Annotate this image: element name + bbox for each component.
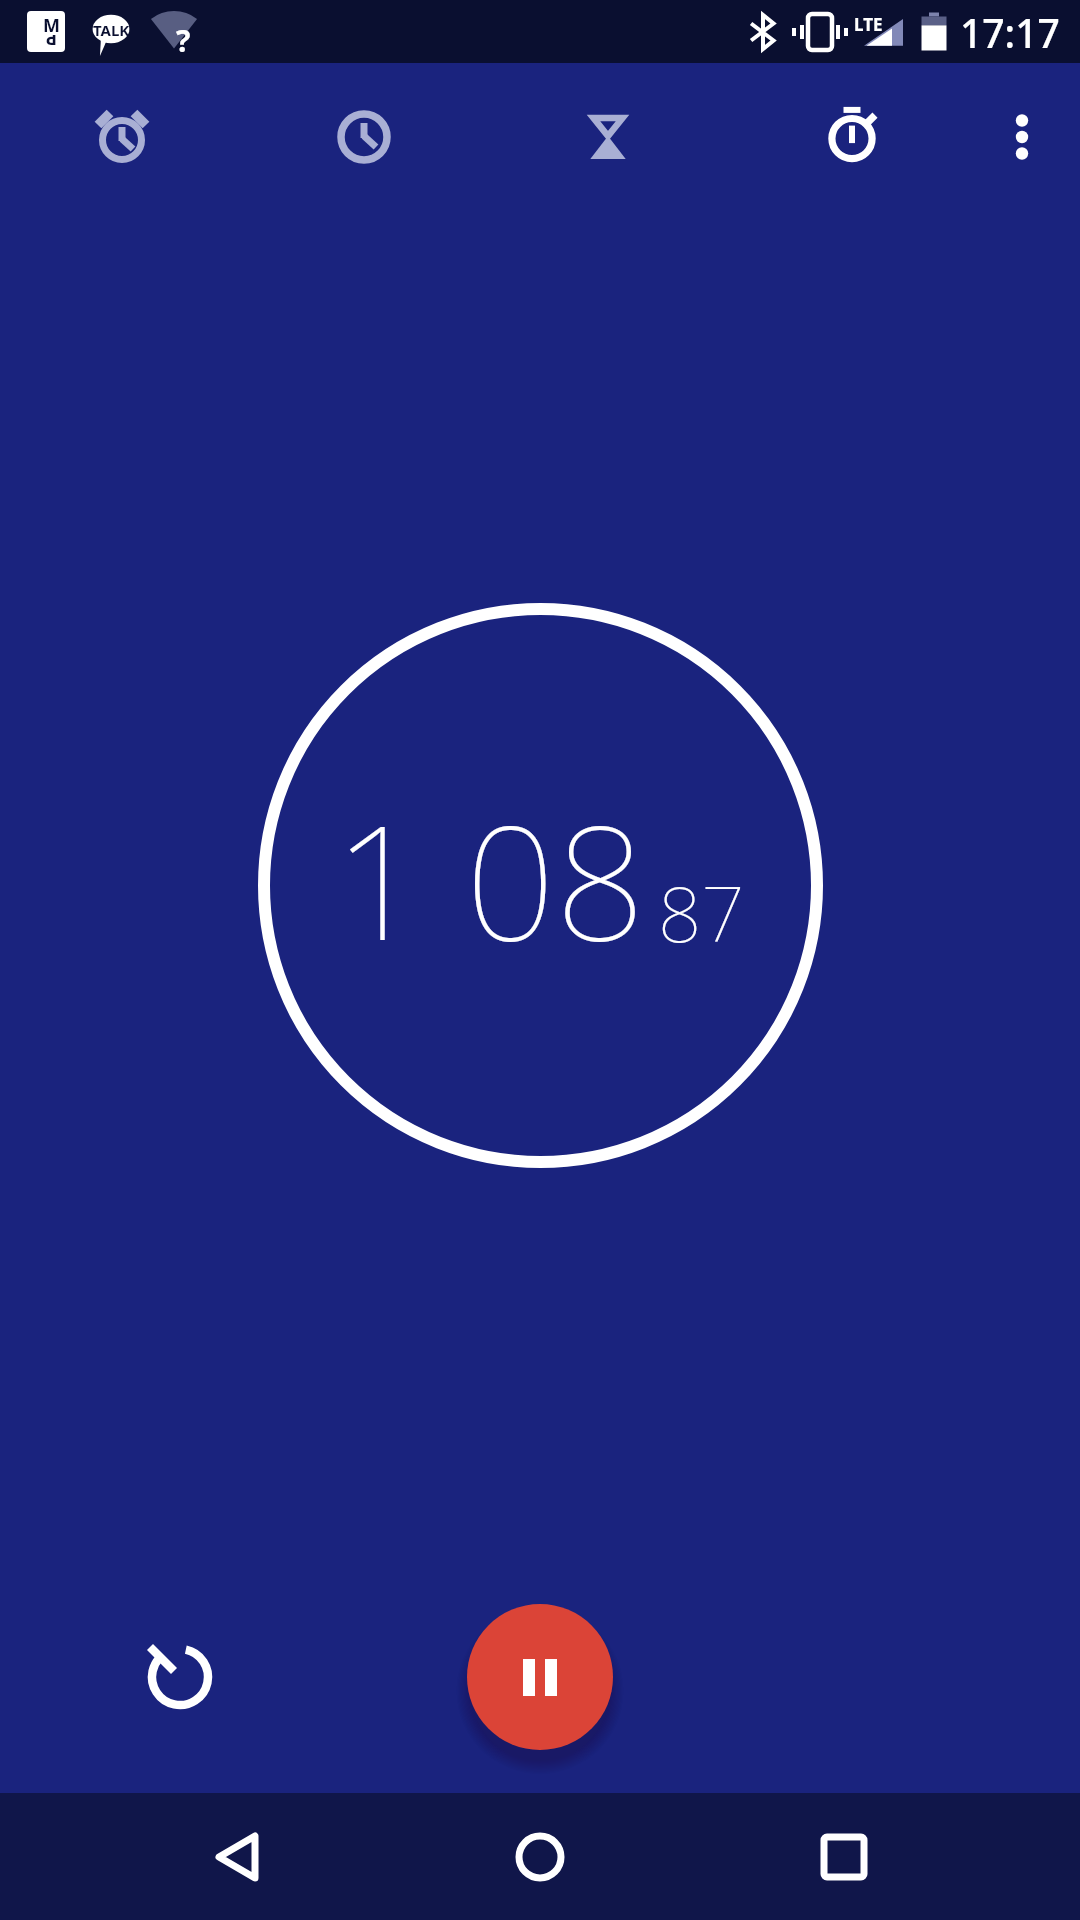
button[interactable]: Recents [787,1793,900,1920]
button[interactable]: Pause [467,1604,613,1750]
staticText: 17:17 [960,6,1060,59]
staticText: P [45,35,57,51]
button[interactable]: Clock [318,91,410,183]
staticText: TALK [93,20,130,40]
button[interactable]: Stopwatch [806,91,898,183]
staticText: 87 [658,861,745,965]
button[interactable]: Alarm [76,91,168,183]
staticText: LTE [854,13,883,36]
button[interactable]: More options [982,97,1062,177]
button[interactable]: Timer [562,91,654,183]
staticText: ? [176,20,191,61]
button[interactable]: Home [483,1793,596,1920]
button[interactable]: Back [180,1793,293,1920]
staticText: M [43,13,60,38]
staticText: 1 08 [334,771,646,986]
button[interactable]: Reset [134,1631,226,1723]
